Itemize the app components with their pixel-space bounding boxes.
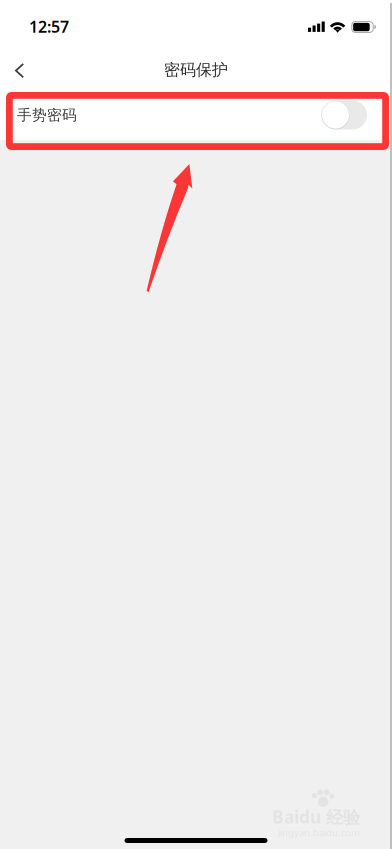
staticText: 12:57	[29, 16, 69, 37]
button[interactable]: Back	[0, 50, 39, 91]
staticText: 密码保护	[164, 60, 228, 80]
staticText: Baidu 经验	[272, 805, 360, 828]
staticText: 手势密码	[17, 106, 77, 124]
staticText: jingyan.baidu.com	[278, 826, 360, 839]
button[interactable]: 手势密码	[0, 89, 392, 141]
